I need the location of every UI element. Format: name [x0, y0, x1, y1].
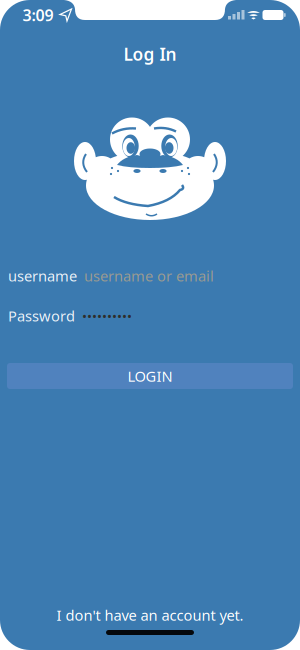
secureTextField[interactable]: **********: [82, 307, 300, 325]
textField[interactable]: username or email: [84, 266, 300, 285]
staticText: username or email: [84, 266, 214, 285]
button[interactable]: LOGIN: [7, 363, 293, 389]
button[interactable]: I don't have an account yet.: [56, 605, 243, 625]
staticText: Password: [8, 306, 75, 325]
staticText: 3:09: [22, 4, 53, 26]
staticText: username: [8, 266, 77, 285]
staticText: I don't have an account yet.: [56, 605, 243, 625]
staticText: LOGIN: [127, 366, 172, 386]
staticText: ••••••••••: [82, 307, 132, 325]
staticText: Log In: [123, 42, 176, 65]
